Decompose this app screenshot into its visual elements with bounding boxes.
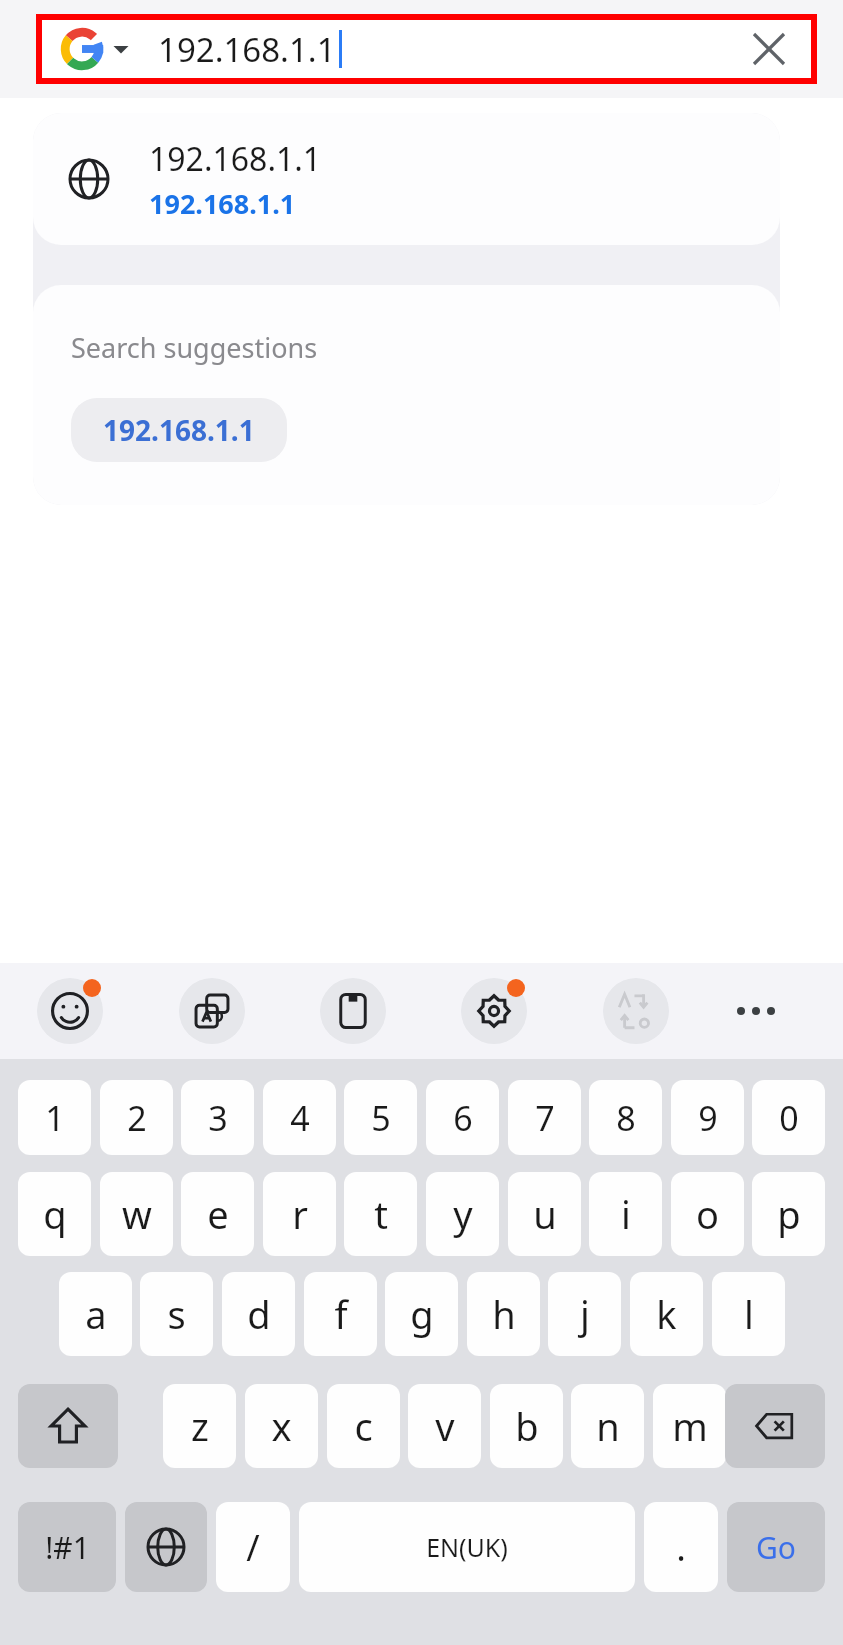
staticText: n <box>596 1400 620 1452</box>
button[interactable]: o <box>671 1172 744 1256</box>
staticText: m <box>672 1400 708 1452</box>
button[interactable]: e <box>181 1172 254 1256</box>
button[interactable]: q <box>18 1172 91 1256</box>
button[interactable]: i <box>589 1172 662 1256</box>
button[interactable]: 4 <box>263 1080 336 1155</box>
button[interactable]: w <box>100 1172 173 1256</box>
button[interactable]: 2 <box>100 1080 173 1155</box>
staticText: x <box>271 1400 292 1452</box>
button[interactable]: b <box>490 1384 563 1468</box>
staticText: z <box>191 1400 209 1452</box>
staticText: k <box>656 1288 677 1340</box>
staticText: 192.168.1.1 <box>158 27 336 72</box>
staticText: f <box>334 1288 348 1340</box>
staticText: v <box>435 1400 455 1452</box>
button[interactable]: . <box>644 1502 718 1592</box>
button[interactable]: z <box>163 1384 236 1468</box>
staticText: . <box>676 1523 686 1572</box>
staticText: s <box>167 1288 186 1340</box>
button[interactable]: f <box>304 1272 377 1356</box>
button[interactable]: 6 <box>426 1080 499 1155</box>
button[interactable]: v <box>408 1384 481 1468</box>
staticText: 0 <box>779 1095 799 1141</box>
button[interactable]: / <box>216 1502 290 1592</box>
staticText: p <box>777 1188 801 1240</box>
button[interactable]: p <box>752 1172 825 1256</box>
staticText: 4 <box>290 1095 310 1141</box>
staticText: i <box>621 1188 631 1240</box>
staticText: q <box>43 1188 67 1240</box>
button[interactable]: l <box>712 1272 785 1356</box>
staticText: h <box>492 1288 516 1340</box>
button[interactable]: j <box>548 1272 621 1356</box>
other: Search engine dropdown <box>110 38 132 60</box>
staticText: l <box>744 1288 754 1340</box>
staticText: 192.168.1.1 <box>149 185 296 222</box>
staticText: !#1 <box>45 1527 90 1568</box>
button[interactable]: y <box>426 1172 499 1256</box>
staticText: 1 <box>45 1095 65 1141</box>
button[interactable]: 0 <box>752 1080 825 1155</box>
button[interactable]: Clear text <box>737 20 801 78</box>
button[interactable]: 7 <box>508 1080 581 1155</box>
staticText: w <box>122 1188 152 1240</box>
button[interactable]: d <box>222 1272 295 1356</box>
button[interactable]: k <box>630 1272 703 1356</box>
button[interactable]: 192.168.1.1 <box>33 113 780 245</box>
staticText: 192.168.1.1 <box>149 137 322 181</box>
staticText: / <box>246 1523 260 1572</box>
button[interactable]: EN(UK) <box>299 1502 635 1592</box>
staticText: a <box>85 1288 107 1340</box>
staticText: 3 <box>208 1095 228 1141</box>
staticText: j <box>580 1288 590 1340</box>
button[interactable]: h <box>467 1272 540 1356</box>
staticText: r <box>292 1188 308 1240</box>
button[interactable]: g <box>385 1272 458 1356</box>
staticText: o <box>696 1188 719 1240</box>
staticText: t <box>374 1188 388 1240</box>
button[interactable]: Change language <box>125 1502 207 1592</box>
staticText: EN(UK) <box>426 1530 508 1564</box>
button[interactable]: 192.168.1.1 <box>71 398 287 462</box>
button[interactable]: 1 <box>18 1080 91 1155</box>
button[interactable]: r <box>263 1172 336 1256</box>
button[interactable]: x <box>245 1384 318 1468</box>
staticText: 9 <box>698 1095 718 1141</box>
staticText: e <box>207 1188 229 1240</box>
staticText: g <box>410 1288 434 1340</box>
button[interactable]: n <box>571 1384 644 1468</box>
button[interactable]: m <box>653 1384 726 1468</box>
staticText: Search suggestions <box>71 329 318 366</box>
button[interactable]: t <box>344 1172 417 1256</box>
button[interactable]: Search engine dropdown <box>42 20 811 78</box>
button[interactable]: 5 <box>344 1080 417 1155</box>
button[interactable]: 9 <box>671 1080 744 1155</box>
button[interactable]: 8 <box>589 1080 662 1155</box>
staticText: u <box>533 1188 557 1240</box>
button[interactable]: !#1 <box>18 1502 116 1592</box>
button[interactable]: Clipboard <box>320 978 386 1044</box>
staticText: 7 <box>535 1095 555 1141</box>
staticText: 8 <box>616 1095 636 1141</box>
button[interactable]: c <box>327 1384 400 1468</box>
button[interactable]: Emoji <box>37 978 103 1044</box>
button[interactable]: More options <box>723 978 789 1044</box>
staticText: 5 <box>371 1095 391 1141</box>
button[interactable]: 3 <box>181 1080 254 1155</box>
staticText: c <box>354 1400 373 1452</box>
button[interactable]: Go <box>727 1502 825 1592</box>
button[interactable]: Backspace <box>725 1384 825 1468</box>
button[interactable]: Translate <box>179 978 245 1044</box>
staticText: 2 <box>127 1095 147 1141</box>
button[interactable]: Settings <box>461 978 527 1044</box>
staticText: y <box>453 1188 473 1240</box>
button[interactable]: s <box>140 1272 213 1356</box>
staticText: 192.168.1.1 <box>103 411 255 449</box>
button[interactable]: Shift <box>18 1384 118 1468</box>
staticText: Go <box>756 1527 796 1568</box>
staticText: b <box>515 1400 539 1452</box>
button[interactable]: u <box>508 1172 581 1256</box>
button[interactable]: a <box>59 1272 132 1356</box>
staticText: 6 <box>453 1095 473 1141</box>
button[interactable]: Text editing <box>603 978 669 1044</box>
